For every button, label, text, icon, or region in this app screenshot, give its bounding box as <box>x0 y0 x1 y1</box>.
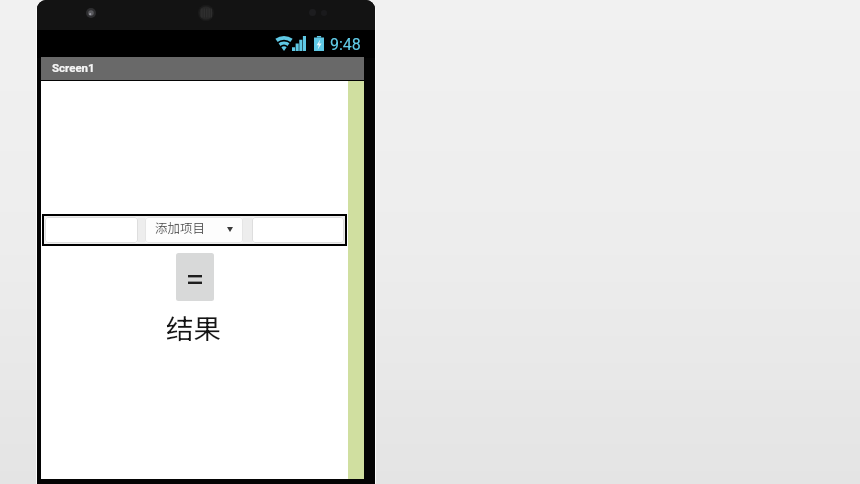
button[interactable]: Equals <box>176 253 214 301</box>
other: WiFi <box>275 36 293 51</box>
staticText: 9:48 <box>330 35 361 54</box>
staticText: Screen1 <box>52 61 95 74</box>
button[interactable]: Text box <box>45 217 138 243</box>
other: Battery <box>314 36 324 51</box>
other: Signal strength <box>292 36 306 51</box>
button[interactable]: Text box <box>252 217 344 243</box>
button[interactable]: 添加项目 spinner <box>145 217 243 243</box>
staticText: 结果 <box>166 307 221 345</box>
staticText: 添加项目 <box>155 218 206 236</box>
